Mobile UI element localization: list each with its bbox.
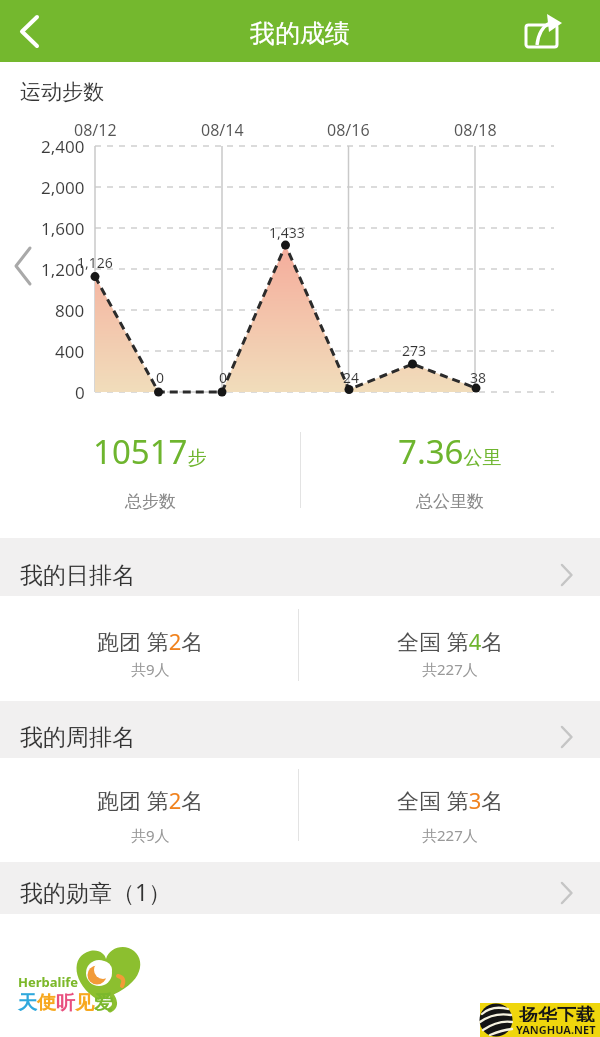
staticText: 0: [219, 368, 228, 386]
staticText: 共9人: [131, 659, 170, 679]
staticText: 跑团 第2名: [97, 626, 204, 652]
staticText: 1,600: [41, 217, 85, 239]
staticText: 我的成绩: [250, 18, 350, 49]
staticText: 08/16: [327, 119, 370, 139]
staticText: 我的日排名: [20, 561, 135, 590]
staticText: 0: [156, 368, 165, 386]
staticText: 800: [55, 299, 85, 321]
staticText: 38: [470, 368, 487, 386]
staticText: 我的勋章（1）: [20, 876, 172, 907]
staticText: 0: [75, 381, 85, 403]
button[interactable]: [0, 538, 600, 596]
staticText: 1,200: [41, 258, 85, 280]
button[interactable]: [0, 0, 60, 62]
staticText: 1,126: [77, 253, 113, 271]
button[interactable]: [0, 862, 600, 914]
button[interactable]: [516, 0, 576, 62]
staticText: 跑团 第2名: [97, 785, 204, 811]
staticText: 天使听见爱: [18, 991, 113, 1015]
staticText: 总步数: [125, 491, 176, 512]
staticText: Herbalife: [18, 973, 79, 991]
staticText: 10517步: [93, 429, 207, 471]
staticText: 273: [402, 341, 427, 359]
button[interactable]: [12, 245, 34, 287]
staticText: 24: [343, 368, 360, 386]
staticText: 全国 第3名: [397, 785, 504, 811]
staticText: 2,000: [41, 176, 85, 198]
staticText: 2,400: [41, 135, 85, 157]
staticText: 400: [55, 340, 85, 362]
staticText: 1,433: [269, 223, 305, 241]
staticText: 我的周排名: [20, 723, 135, 752]
staticText: 08/18: [454, 119, 497, 139]
staticText: 7.36公里: [398, 429, 502, 471]
staticText: 共9人: [131, 825, 170, 845]
staticText: 全国 第4名: [397, 626, 504, 652]
staticText: 共227人: [422, 659, 478, 679]
staticText: 共227人: [422, 825, 478, 845]
staticText: 08/14: [201, 119, 244, 139]
staticText: 扬华下载: [519, 1004, 595, 1022]
staticText: 运动步数: [20, 79, 104, 103]
button[interactable]: [0, 701, 600, 758]
staticText: 08/12: [74, 119, 117, 139]
staticText: YANGHUA.NET: [516, 1022, 596, 1035]
staticText: 总公里数: [416, 491, 484, 512]
